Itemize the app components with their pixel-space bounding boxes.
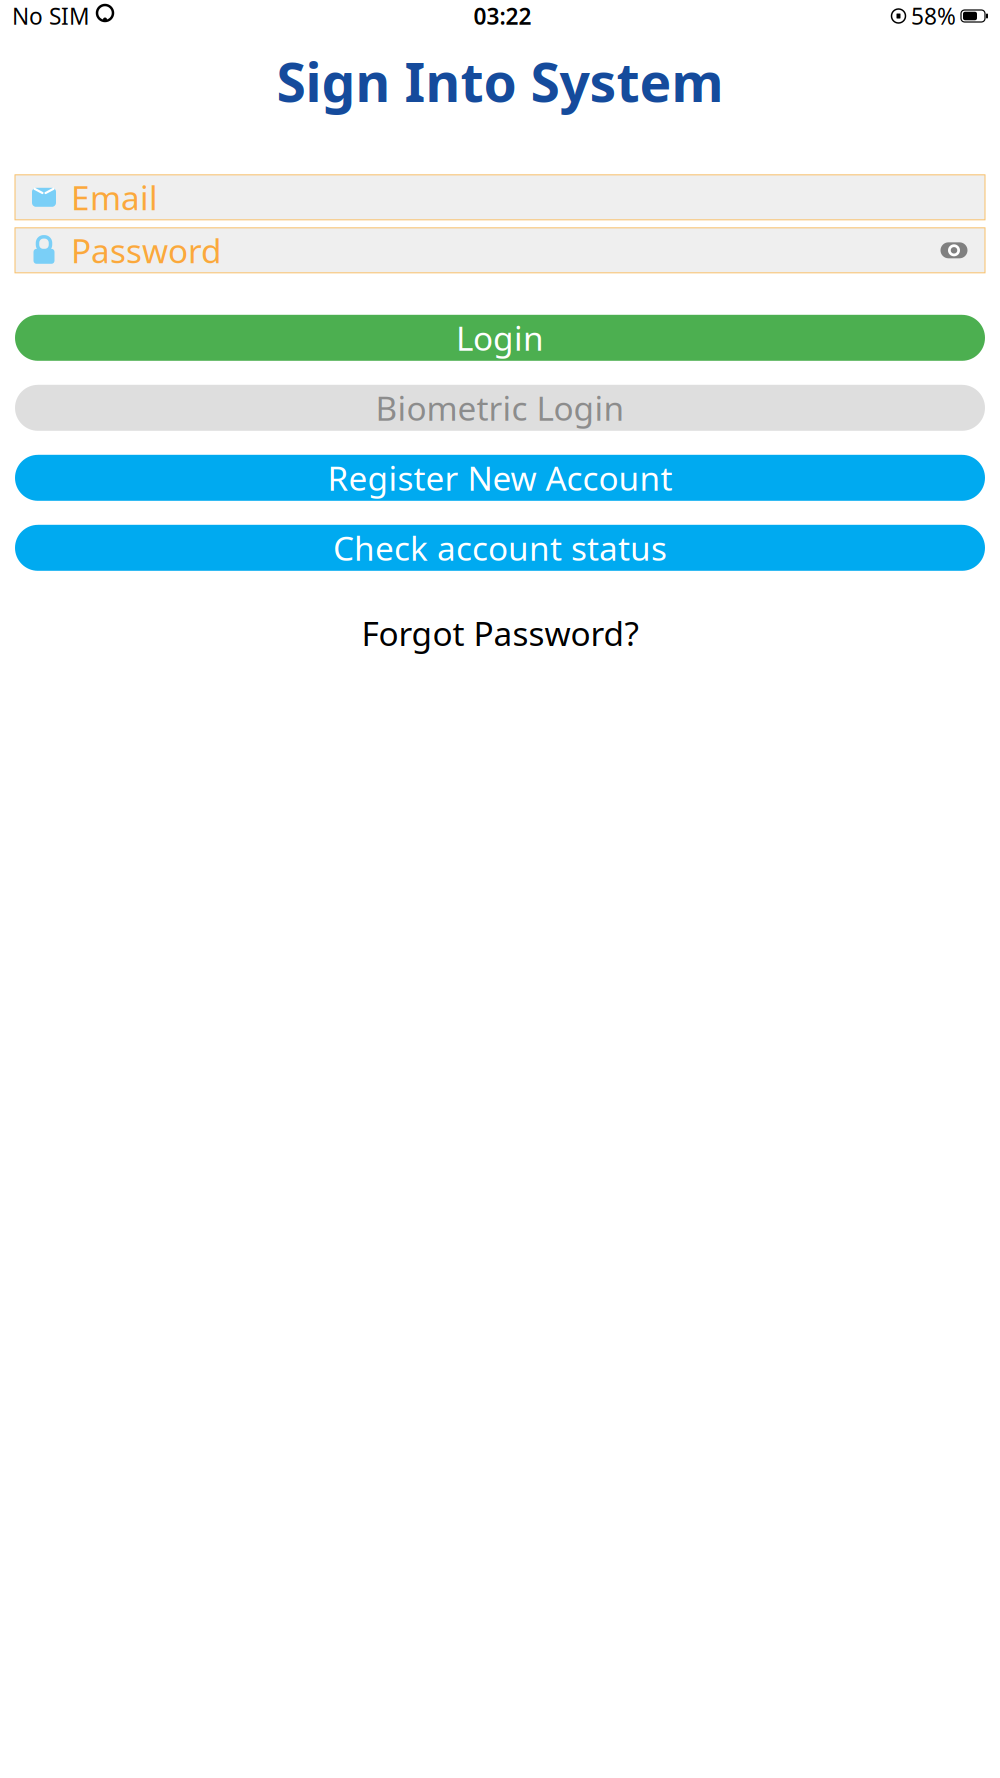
staticText: Forgot Password? [361,611,638,655]
button[interactable]: Show password [939,237,969,263]
staticText: Check account status [333,526,667,570]
staticText: 58% [911,1,956,31]
button[interactable]: Check account status [15,525,985,571]
staticText: 03:22 [473,1,531,31]
staticText: Password [71,228,222,272]
button[interactable]: Biometric Login [15,385,985,431]
button[interactable]: Login [15,315,985,361]
staticText: No SIM [12,1,90,31]
staticText: Login [456,316,544,360]
button[interactable]: Register New Account [15,455,985,501]
staticText: Email [71,175,158,219]
staticText: Biometric Login [375,386,624,430]
button[interactable]: Forgot Password? [345,605,654,661]
staticText: Register New Account [327,456,672,500]
staticText: Sign Into System [276,46,723,117]
